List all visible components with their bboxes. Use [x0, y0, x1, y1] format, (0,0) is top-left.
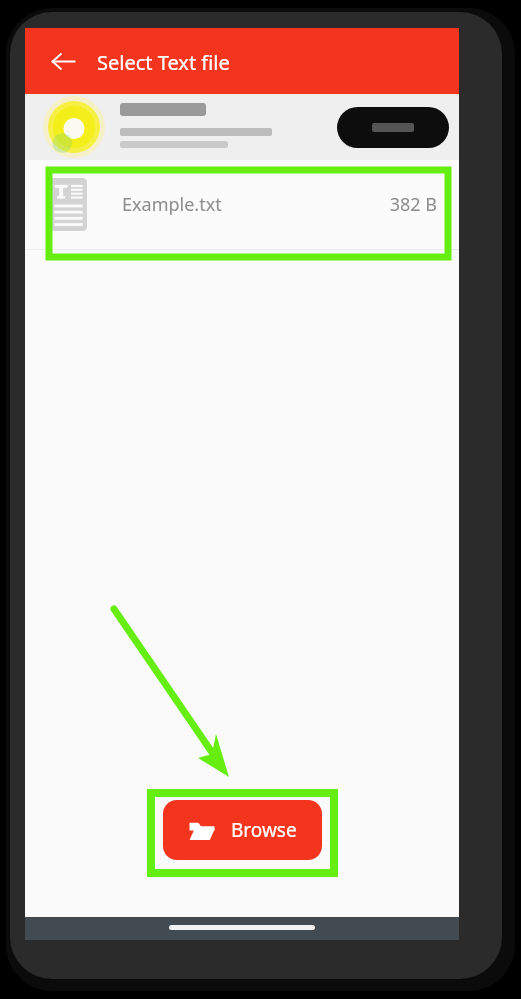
button[interactable]: Advertisement [25, 94, 459, 160]
staticText: Browse [231, 817, 297, 843]
button[interactable]: Back [39, 37, 87, 85]
staticText: Select Text file [97, 49, 230, 76]
staticText: 382 B [389, 192, 437, 217]
staticText: Example.txt [122, 192, 222, 217]
button[interactable]: Install [337, 107, 449, 148]
button[interactable]: Browse [163, 800, 322, 860]
button[interactable]: Example.txt [25, 160, 459, 249]
